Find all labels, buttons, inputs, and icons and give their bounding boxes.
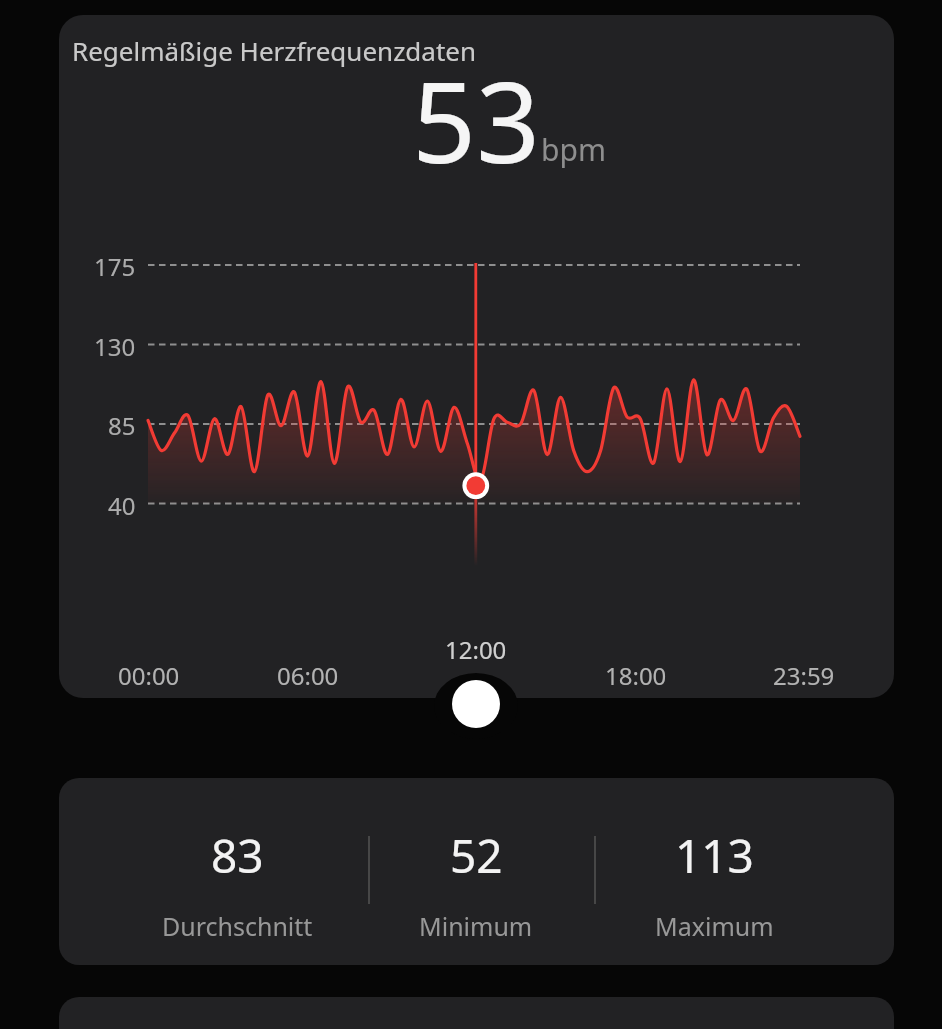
staticText: 175 bbox=[94, 250, 136, 280]
staticText: 23:59 bbox=[773, 659, 835, 689]
staticText: 06:00 bbox=[277, 659, 339, 689]
staticText: Minimum bbox=[419, 909, 533, 943]
staticText: 83 bbox=[211, 824, 264, 887]
staticText: 40 bbox=[108, 489, 136, 519]
button[interactable] bbox=[452, 680, 500, 728]
staticText: 85 bbox=[108, 409, 136, 439]
staticText: 113 bbox=[675, 824, 754, 887]
button[interactable]: 83 bbox=[59, 778, 894, 965]
staticText: 18:00 bbox=[605, 659, 667, 689]
staticText: 00:00 bbox=[118, 659, 180, 689]
staticText: Durchschnitt bbox=[162, 909, 313, 943]
button[interactable]: Regelmäßige Herzfrequenzdaten bbox=[59, 15, 894, 698]
staticText: 12:00 bbox=[445, 633, 507, 663]
staticText: Maximum bbox=[655, 909, 774, 943]
staticText: 53 bbox=[412, 43, 541, 196]
staticText: 130 bbox=[94, 330, 136, 360]
staticText: bpm bbox=[541, 129, 606, 170]
staticText: Regelmäßige Herzfrequenzdaten bbox=[72, 33, 477, 68]
staticText: 52 bbox=[450, 824, 503, 887]
